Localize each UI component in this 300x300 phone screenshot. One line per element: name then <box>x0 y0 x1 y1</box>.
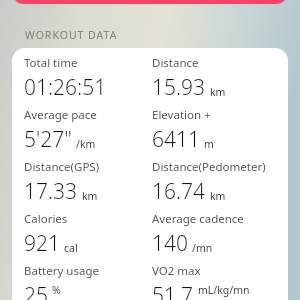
staticText: Distance <box>152 55 199 71</box>
staticText: Distance(GPS) <box>24 159 100 175</box>
staticText: 25 <box>24 281 48 300</box>
staticText: Average pace <box>24 107 97 123</box>
staticText: km <box>210 85 226 99</box>
staticText: 16.74 <box>152 177 206 206</box>
button[interactable]: VO2 max <box>152 263 250 300</box>
staticText: km <box>210 189 226 203</box>
staticText: 140 <box>152 229 188 258</box>
staticText: Total time <box>24 55 78 71</box>
staticText: cal <box>64 241 78 255</box>
staticText: 5'27" <box>24 125 72 154</box>
staticText: Battery usage <box>24 263 99 279</box>
staticText: Distance(Pedometer) <box>152 159 266 175</box>
staticText: Average cadence <box>152 211 244 227</box>
staticText: Calories <box>24 211 68 227</box>
button[interactable] <box>12 0 288 4</box>
button[interactable]: Distance(Pedometer) <box>152 159 266 206</box>
staticText: m <box>204 137 214 151</box>
button[interactable]: Average pace <box>24 107 97 154</box>
staticText: 6411 <box>152 125 200 154</box>
staticText: 15.93 <box>152 73 206 102</box>
button[interactable]: Calories <box>24 211 78 258</box>
button[interactable]: Elevation + <box>152 107 214 154</box>
staticText: % <box>52 283 61 297</box>
button[interactable]: Battery usage <box>24 263 99 300</box>
staticText: 921 <box>24 229 60 258</box>
button[interactable]: Total time <box>12 48 288 300</box>
button[interactable]: Distance <box>152 55 226 102</box>
button[interactable]: Distance(GPS) <box>24 159 100 206</box>
staticText: 01:26:51 <box>24 73 107 102</box>
button[interactable]: Total time <box>24 55 107 102</box>
staticText: /mn <box>192 241 213 255</box>
staticText: km <box>82 189 98 203</box>
button[interactable]: Average cadence <box>152 211 244 258</box>
staticText: Elevation + <box>152 107 211 123</box>
staticText: 51.7 <box>152 281 194 300</box>
staticText: WORKOUT DATA <box>25 28 118 42</box>
staticText: VO2 max <box>152 263 201 279</box>
staticText: 17.33 <box>24 177 78 206</box>
staticText: /km <box>76 137 96 151</box>
staticText: mL/kg/mn <box>198 283 250 297</box>
